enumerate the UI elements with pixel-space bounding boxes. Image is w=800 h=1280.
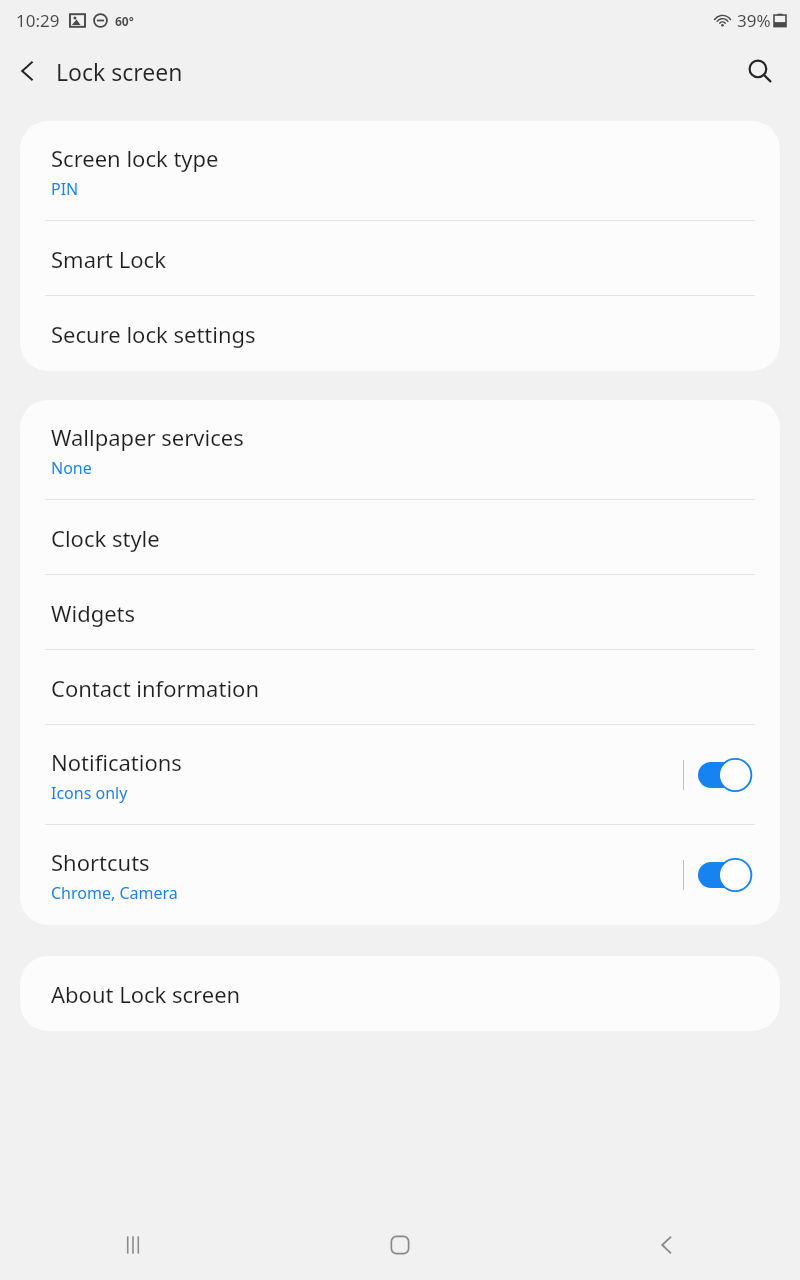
staticText: Contact information	[51, 673, 259, 703]
staticText: PIN	[51, 178, 79, 200]
button[interactable]: Secure lock settings	[20, 296, 780, 371]
staticText: 39%	[737, 9, 771, 32]
button[interactable]: Contact information	[20, 650, 780, 725]
button[interactable]: Toggle Shortcuts	[698, 854, 758, 896]
button[interactable]: Widgets	[20, 575, 780, 650]
button[interactable]: About Lock screen	[20, 956, 780, 1031]
button[interactable]: Toggle Notifications	[698, 754, 758, 796]
button[interactable]: Notifications	[20, 725, 780, 825]
staticText: Smart Lock	[51, 244, 166, 274]
staticText: Widgets	[51, 598, 136, 628]
staticText: 60°	[115, 13, 134, 29]
button[interactable]: Shortcuts	[20, 825, 780, 925]
staticText: None	[51, 457, 92, 479]
button[interactable]: Back	[0, 43, 56, 99]
staticText: Notifications	[51, 747, 182, 777]
button[interactable]: Search	[734, 45, 786, 97]
staticText: Wallpaper services	[51, 422, 244, 452]
button[interactable]: Smart Lock	[20, 221, 780, 296]
staticText: Secure lock settings	[51, 319, 256, 349]
button[interactable]: Screen lock type	[20, 121, 780, 221]
button[interactable]: Wallpaper services	[20, 400, 780, 500]
button[interactable]: Home	[266, 1210, 533, 1280]
staticText: About Lock screen	[51, 979, 241, 1009]
staticText: Chrome, Camera	[51, 882, 178, 904]
staticText: 10:29	[16, 9, 60, 32]
staticText: Shortcuts	[51, 847, 150, 877]
staticText: Icons only	[51, 782, 128, 804]
staticText: Clock style	[51, 523, 160, 553]
staticText: Lock screen	[56, 56, 183, 87]
button[interactable]: Clock style	[20, 500, 780, 575]
button[interactable]: Recents	[0, 1210, 266, 1280]
button[interactable]: Back	[533, 1210, 800, 1280]
staticText: Screen lock type	[51, 143, 219, 173]
